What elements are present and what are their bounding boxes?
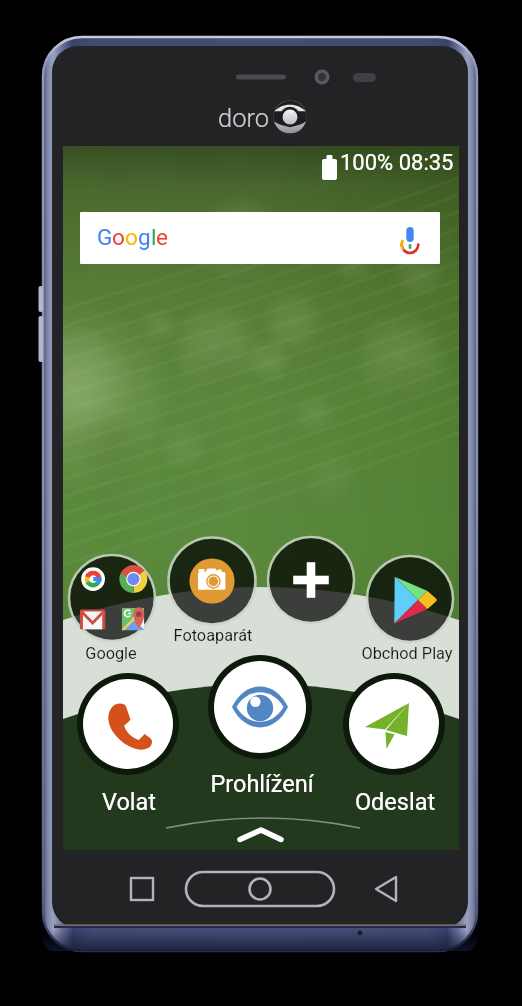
staticText: e: [156, 224, 168, 250]
staticText: l: [151, 224, 157, 250]
button[interactable]: Obchod Play: [367, 556, 453, 642]
staticText: g: [138, 224, 151, 250]
staticText: o: [112, 224, 125, 250]
button[interactable]: Odeslat: [343, 673, 445, 775]
button[interactable]: Fotoaparát: [168, 537, 256, 625]
staticText: G: [97, 224, 113, 250]
button[interactable]: G: [80, 212, 440, 264]
button[interactable]: Add widget: [268, 537, 354, 623]
button[interactable]: Open app list: [200, 818, 320, 848]
staticText: Prohlížení: [122, 770, 402, 798]
staticText: Google: [0, 644, 251, 663]
staticText: Obchod Play: [267, 644, 522, 663]
staticText: doro: [218, 103, 270, 133]
button[interactable]: Voice search: [386, 212, 440, 264]
staticText: o: [125, 224, 138, 250]
button[interactable]: Volat: [77, 673, 179, 775]
staticText: Fotoaparát: [73, 626, 353, 645]
staticText: Odeslat: [255, 788, 522, 816]
staticText: 100% 08:35: [340, 150, 454, 176]
button[interactable]: Google folder: [69, 555, 155, 641]
button[interactable]: Prohlížení: [208, 655, 312, 759]
staticText: Volat: [0, 788, 269, 816]
